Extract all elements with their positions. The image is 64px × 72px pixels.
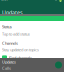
staticText: Updates: [2, 9, 23, 16]
staticText: Find channels: [9, 55, 32, 60]
staticText: Updates: [2, 59, 16, 64]
staticText: Calls: [2, 65, 11, 71]
staticText: Stay updated on topics: [2, 47, 39, 52]
staticText: •ıl 🔋: [53, 0, 63, 2]
staticText: Tap to add status: [2, 31, 30, 37]
staticText: Channels: [2, 41, 18, 46]
staticText: 9:41: [1, 0, 8, 2]
staticText: Status: [2, 24, 12, 29]
